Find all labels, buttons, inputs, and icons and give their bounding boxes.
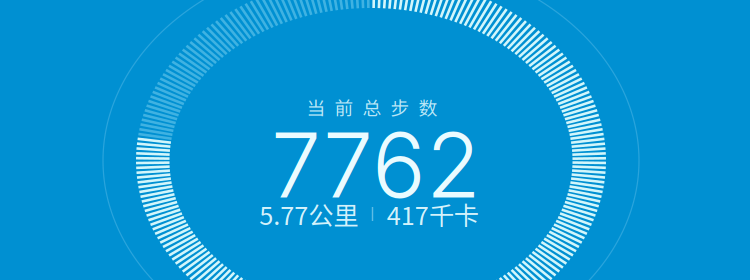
staticText: 5.77公里 [259,196,358,232]
staticText: 当前总步数 [306,93,437,120]
staticText: 7762 [271,111,481,219]
staticText: 417千卡 [387,196,479,232]
